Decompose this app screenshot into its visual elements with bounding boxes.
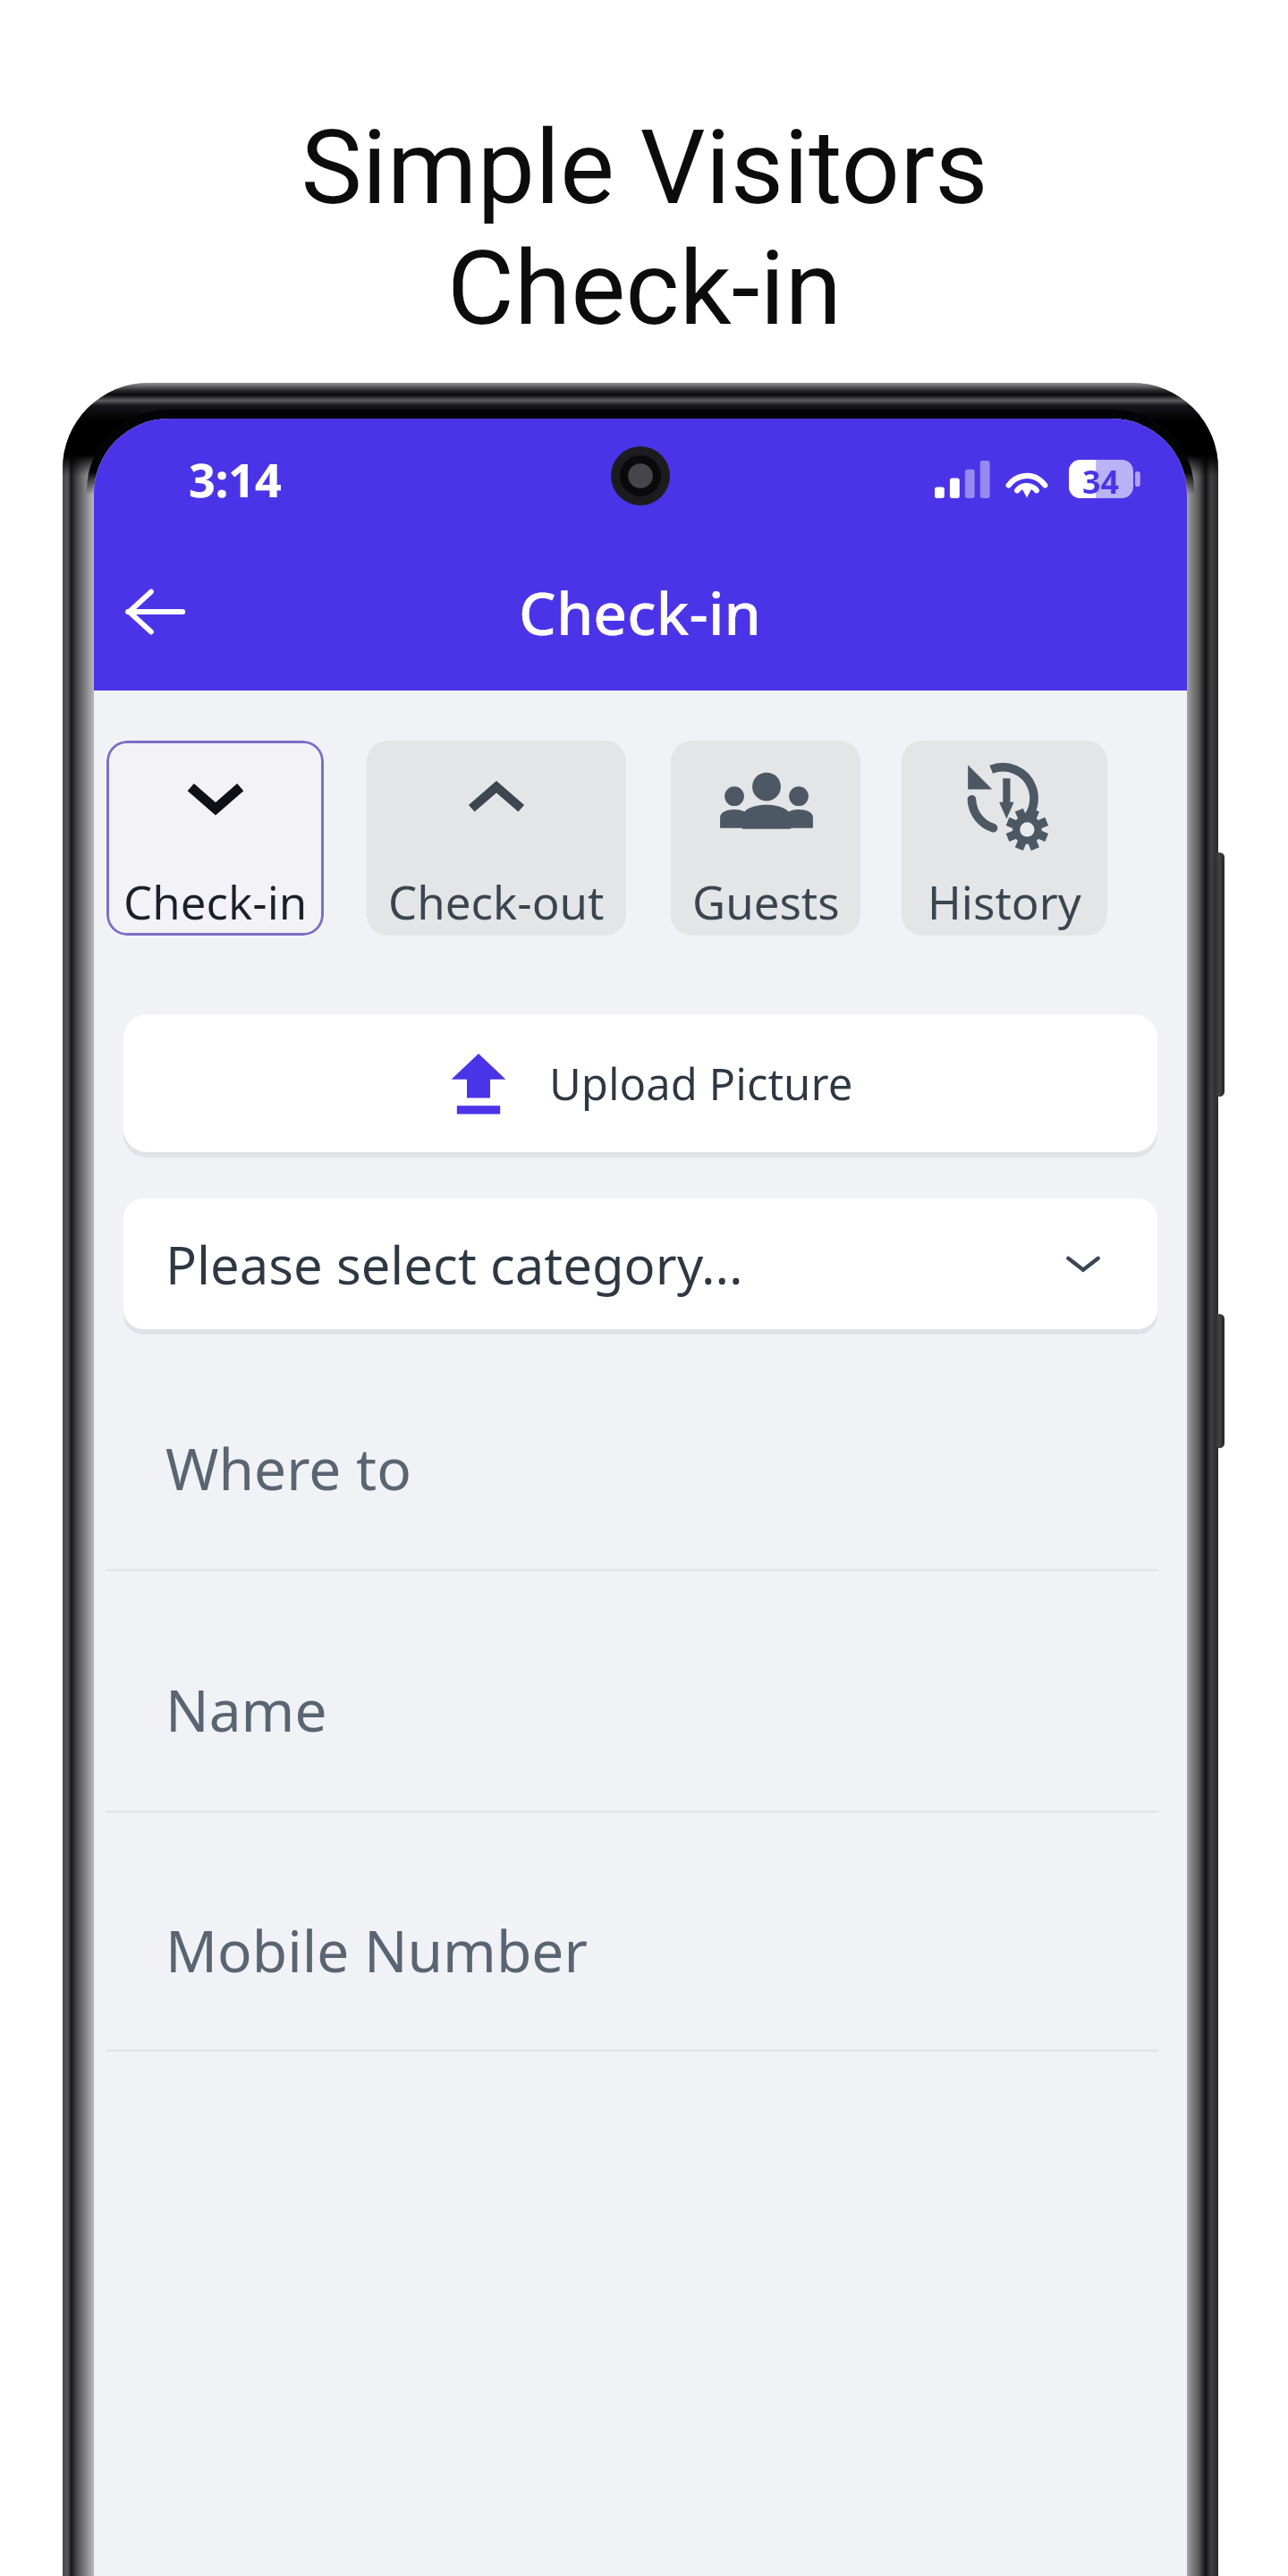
staticText: 3:14 bbox=[189, 447, 282, 511]
staticText: 34 bbox=[1082, 460, 1120, 498]
staticText: Check-in bbox=[519, 572, 761, 652]
button[interactable]: Back bbox=[101, 558, 208, 665]
staticText: History bbox=[928, 870, 1081, 932]
button[interactable]: Name bbox=[94, 1572, 1187, 1813]
staticText: Upload Picture bbox=[549, 1054, 853, 1114]
staticText: Check-in bbox=[447, 228, 842, 349]
staticText: Guests bbox=[692, 870, 840, 932]
staticText: Check-in bbox=[123, 870, 308, 932]
button[interactable]: Please select category... bbox=[123, 1199, 1157, 1329]
staticText: Mobile Number bbox=[165, 1911, 588, 1989]
button[interactable]: History bbox=[902, 741, 1107, 936]
button[interactable]: Check-in bbox=[106, 741, 324, 936]
staticText: Name bbox=[165, 1671, 327, 1749]
staticText: Where to bbox=[165, 1429, 411, 1507]
button[interactable]: Upload Picture bbox=[123, 1014, 1157, 1152]
button[interactable]: Mobile Number bbox=[94, 1813, 1187, 2052]
button[interactable]: Guests bbox=[671, 741, 860, 936]
staticText: Check-out bbox=[388, 870, 605, 932]
button[interactable]: Check-out bbox=[367, 741, 626, 936]
button[interactable]: Where to bbox=[94, 1330, 1187, 1572]
staticText: Simple Visitors bbox=[301, 107, 988, 228]
staticText: Please select category... bbox=[165, 1229, 743, 1300]
